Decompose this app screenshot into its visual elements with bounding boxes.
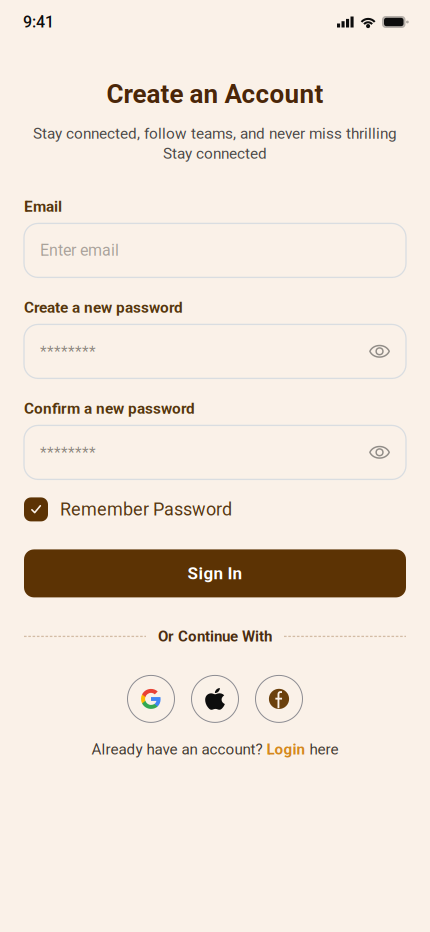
button[interactable]: Show password bbox=[365, 336, 395, 366]
button[interactable]: Remember Password bbox=[24, 497, 406, 521]
button[interactable]: Sign In bbox=[24, 549, 406, 597]
staticText: Create an Account bbox=[106, 79, 323, 109]
staticText: Remember Password bbox=[60, 499, 232, 520]
button[interactable]: Continue with Facebook bbox=[255, 675, 302, 722]
staticText: 9:41 bbox=[23, 13, 54, 31]
staticText: Or Continue With bbox=[158, 628, 272, 645]
button[interactable]: Continue with Google bbox=[127, 675, 174, 722]
button[interactable]: Show password bbox=[365, 437, 395, 467]
staticText: Email bbox=[24, 197, 62, 215]
staticText: Create a new password bbox=[24, 298, 183, 316]
staticText: ******** bbox=[40, 342, 96, 360]
staticText: Stay connected bbox=[163, 144, 267, 162]
button[interactable]: Login bbox=[266, 740, 305, 758]
staticText: Confirm a new password bbox=[24, 399, 195, 417]
staticText: Stay connected, follow teams, and never … bbox=[33, 124, 397, 142]
staticText: Already have an account? bbox=[91, 740, 266, 758]
button[interactable]: Continue with Apple bbox=[191, 675, 238, 722]
staticText: ******** bbox=[40, 443, 96, 461]
staticText: Sign In bbox=[187, 563, 242, 583]
staticText: Enter email bbox=[40, 241, 119, 260]
staticText: Login bbox=[266, 740, 305, 758]
staticText: here bbox=[305, 740, 338, 758]
